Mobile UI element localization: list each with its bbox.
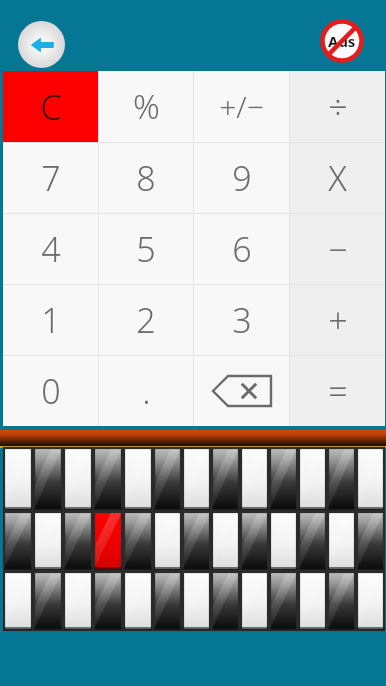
button[interactable]: White key — [357, 448, 384, 510]
button[interactable]: White key — [64, 572, 92, 630]
button[interactable]: Black key — [34, 572, 62, 630]
staticText: 1 — [41, 297, 61, 343]
button[interactable]: 2 — [99, 285, 193, 355]
button[interactable]: % — [99, 71, 193, 142]
button[interactable]: Black key — [212, 448, 239, 510]
button[interactable]: 9 — [194, 143, 289, 213]
button[interactable]: White key — [4, 448, 32, 510]
button[interactable]: Black key — [154, 448, 181, 510]
staticText: ÷ — [328, 84, 348, 130]
staticText: % — [133, 84, 160, 129]
button[interactable]: White key — [124, 448, 152, 510]
button[interactable]: Black key — [34, 448, 62, 510]
button[interactable]: 7 — [3, 143, 98, 213]
button[interactable]: White key — [183, 448, 210, 510]
button[interactable]: White key — [241, 448, 268, 510]
button[interactable]: ÷ — [290, 71, 385, 142]
button[interactable]: Black key — [270, 572, 297, 630]
button[interactable]: White key — [154, 512, 181, 570]
staticText: 6 — [232, 226, 252, 272]
staticText: 5 — [136, 226, 156, 272]
button[interactable]: White key — [94, 512, 122, 570]
staticText: 4 — [41, 226, 61, 272]
staticText: +/− — [219, 86, 264, 127]
staticText: 3 — [232, 297, 252, 343]
button[interactable]: C — [3, 71, 98, 142]
button[interactable]: Black key — [64, 512, 92, 570]
button[interactable]: 4 — [3, 214, 98, 284]
button[interactable]: 5 — [99, 214, 193, 284]
button[interactable]: Black key — [94, 572, 122, 630]
button[interactable]: − — [290, 214, 385, 284]
button[interactable]: Black key — [4, 512, 32, 570]
button[interactable]: White key — [212, 512, 239, 570]
button[interactable]: White key — [241, 572, 268, 630]
button[interactable]: Black key — [241, 512, 268, 570]
button[interactable]: Backspace — [194, 356, 289, 426]
button[interactable]: White key — [64, 448, 92, 510]
button[interactable]: White key — [124, 572, 152, 630]
button[interactable]: + — [290, 285, 385, 355]
staticText: X — [328, 155, 347, 201]
button[interactable]: Back — [18, 21, 65, 68]
button[interactable]: = — [290, 356, 385, 426]
staticText: 2 — [136, 297, 156, 343]
button[interactable]: Black key — [270, 448, 297, 510]
button[interactable]: Remove ads — [320, 19, 364, 63]
button[interactable]: White key — [299, 572, 326, 630]
button[interactable]: X — [290, 143, 385, 213]
staticText: + — [328, 297, 348, 343]
button[interactable]: Black key — [357, 512, 384, 570]
button[interactable]: White key — [183, 572, 210, 630]
button[interactable]: White key — [4, 572, 32, 630]
button[interactable]: Black key — [299, 512, 326, 570]
button[interactable]: Black key — [183, 512, 210, 570]
button[interactable]: Black key — [154, 572, 181, 630]
button[interactable]: Black key — [328, 448, 355, 510]
button[interactable]: 6 — [194, 214, 289, 284]
staticText: 0 — [41, 368, 61, 414]
button[interactable]: White key — [34, 512, 62, 570]
staticText: 8 — [136, 155, 156, 201]
staticText: 7 — [41, 155, 61, 201]
button[interactable]: Black key — [124, 512, 152, 570]
staticText: = — [328, 368, 348, 414]
button[interactable]: 3 — [194, 285, 289, 355]
staticText: . — [142, 368, 151, 414]
staticText: Ads — [328, 31, 356, 51]
button[interactable]: Black key — [212, 572, 239, 630]
button[interactable]: White key — [270, 512, 297, 570]
button[interactable]: Black key — [328, 572, 355, 630]
button[interactable]: White key — [357, 572, 384, 630]
button[interactable]: . — [99, 356, 193, 426]
button[interactable]: +/− — [194, 71, 289, 142]
button[interactable]: White key — [328, 512, 355, 570]
button[interactable]: 8 — [99, 143, 193, 213]
staticText: − — [328, 226, 348, 272]
button[interactable]: 1 — [3, 285, 98, 355]
button[interactable]: White key — [299, 448, 326, 510]
button[interactable]: 0 — [3, 356, 98, 426]
button[interactable]: Black key — [94, 448, 122, 510]
staticText: C — [40, 84, 62, 130]
staticText: 9 — [232, 155, 252, 201]
